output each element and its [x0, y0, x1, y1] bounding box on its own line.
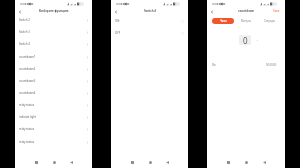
button[interactable]: Back [208, 8, 215, 15]
staticText: Switch 3 [19, 30, 30, 34]
staticText: Часы [220, 19, 227, 23]
staticText: countdown4 [19, 91, 36, 95]
staticText: 00:00:00 [266, 63, 277, 67]
button[interactable]: Back [66, 157, 76, 167]
button[interactable]: Recents [223, 157, 233, 167]
button[interactable]: Home [241, 157, 251, 167]
button[interactable]: Back [16, 8, 23, 15]
button[interactable]: Switch 2 [15, 14, 92, 26]
button[interactable]: relay status [15, 99, 92, 111]
button[interactable]: countdown3 [15, 75, 92, 87]
staticText: countdown1 [19, 55, 36, 59]
button[interactable]: Recents [31, 157, 41, 167]
staticText: Секунды [264, 19, 275, 23]
staticText: On [212, 63, 216, 67]
button[interactable]: OFF [111, 27, 188, 39]
button[interactable]: Back [259, 157, 269, 167]
staticText: OFF [115, 31, 121, 35]
staticText: ON [115, 19, 120, 23]
button[interactable]: countdown2 [15, 63, 92, 75]
button[interactable]: Home [145, 157, 155, 167]
button[interactable]: Switch 3 [15, 26, 92, 38]
staticText: countdown2 [19, 67, 36, 71]
button[interactable]: countdown1 [15, 51, 92, 63]
button[interactable]: relay status [15, 123, 92, 135]
button[interactable]: Часы [212, 18, 234, 24]
staticText: relay status [19, 140, 35, 144]
staticText: countdown3 [19, 79, 36, 83]
staticText: indicate light [19, 115, 37, 119]
button[interactable]: On [207, 60, 285, 69]
button[interactable]: 0 [239, 35, 251, 45]
button[interactable]: Секунды [258, 18, 281, 24]
button[interactable]: indicate light [15, 111, 92, 123]
staticText: Выберите функцию [39, 9, 69, 13]
staticText: relay status [19, 127, 35, 131]
button[interactable]: Switch 4 [15, 38, 92, 50]
staticText: Switch 4 [19, 42, 30, 46]
button[interactable]: Home [49, 157, 59, 167]
staticText: 0 [243, 35, 248, 45]
staticText: Минуты [241, 19, 252, 23]
staticText: Save [273, 9, 280, 13]
button[interactable]: relay status [15, 136, 92, 148]
button[interactable]: countdown4 [15, 87, 92, 99]
button[interactable]: ON [111, 15, 188, 27]
button[interactable]: Back [112, 8, 119, 15]
button[interactable]: Back [162, 157, 172, 167]
button[interactable]: Минуты [235, 18, 258, 24]
staticText: relay status [19, 103, 35, 107]
staticText: Switch 4 [144, 9, 156, 13]
staticText: Switch 2 [19, 18, 30, 22]
button[interactable]: Save [270, 7, 285, 15]
staticText: countdown [238, 9, 255, 13]
button[interactable]: Recents [127, 157, 137, 167]
